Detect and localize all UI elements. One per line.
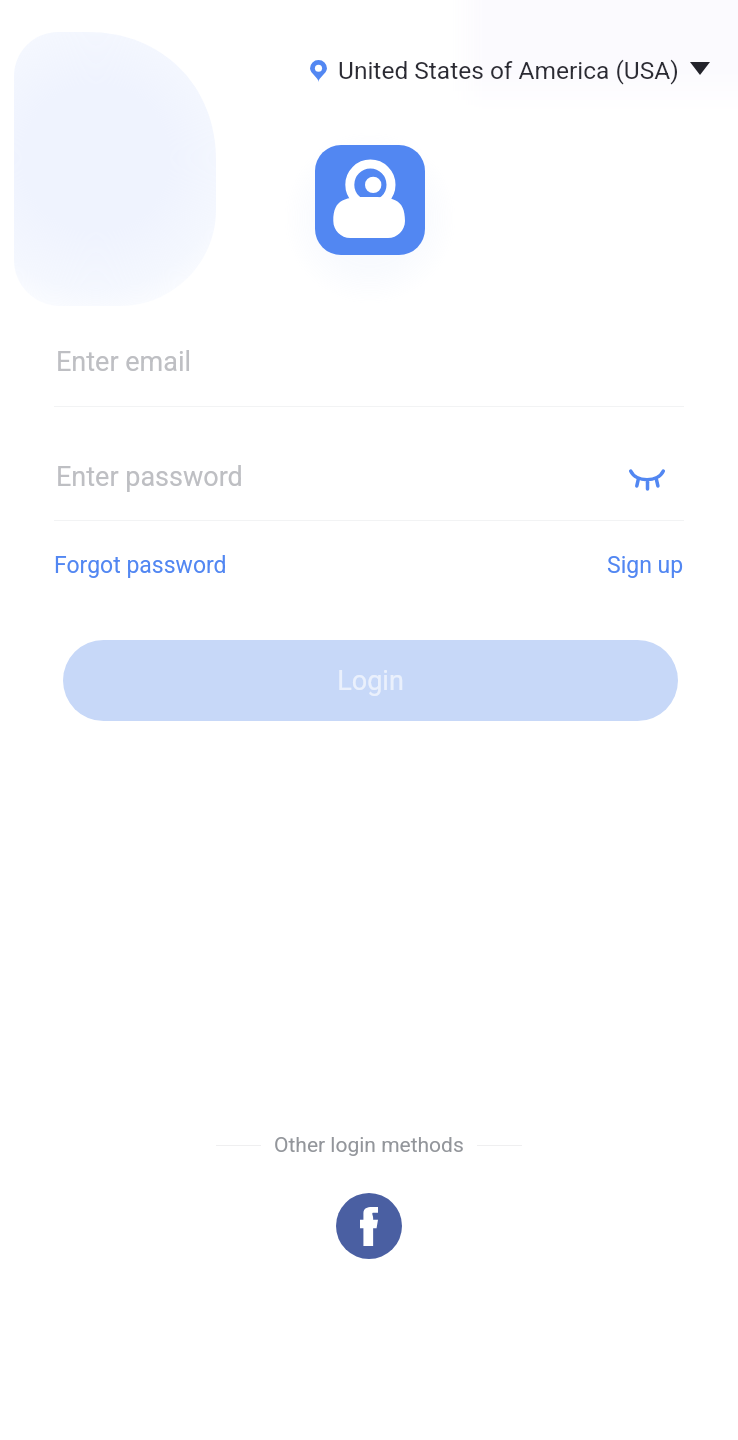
staticText: Enter password: [56, 461, 243, 493]
button[interactable]: Login: [63, 640, 678, 721]
button[interactable]: Sign up: [607, 547, 684, 583]
staticText: United States of America (USA): [338, 56, 679, 85]
button[interactable]: Enter email: [54, 330, 684, 407]
button[interactable]: App logo: [315, 145, 425, 255]
staticText: Sign up: [607, 552, 684, 578]
staticText: Other login methods: [274, 1133, 464, 1158]
button[interactable]: Forgot password: [54, 547, 227, 583]
staticText: Enter email: [56, 346, 192, 378]
button[interactable]: United States of America (USA): [300, 48, 720, 93]
staticText: Login: [337, 665, 404, 697]
button[interactable]: Sign in with Facebook: [336, 1193, 402, 1259]
button[interactable]: Enter password: [54, 444, 684, 521]
button[interactable]: Show password: [622, 453, 672, 503]
staticText: Forgot password: [54, 552, 227, 578]
